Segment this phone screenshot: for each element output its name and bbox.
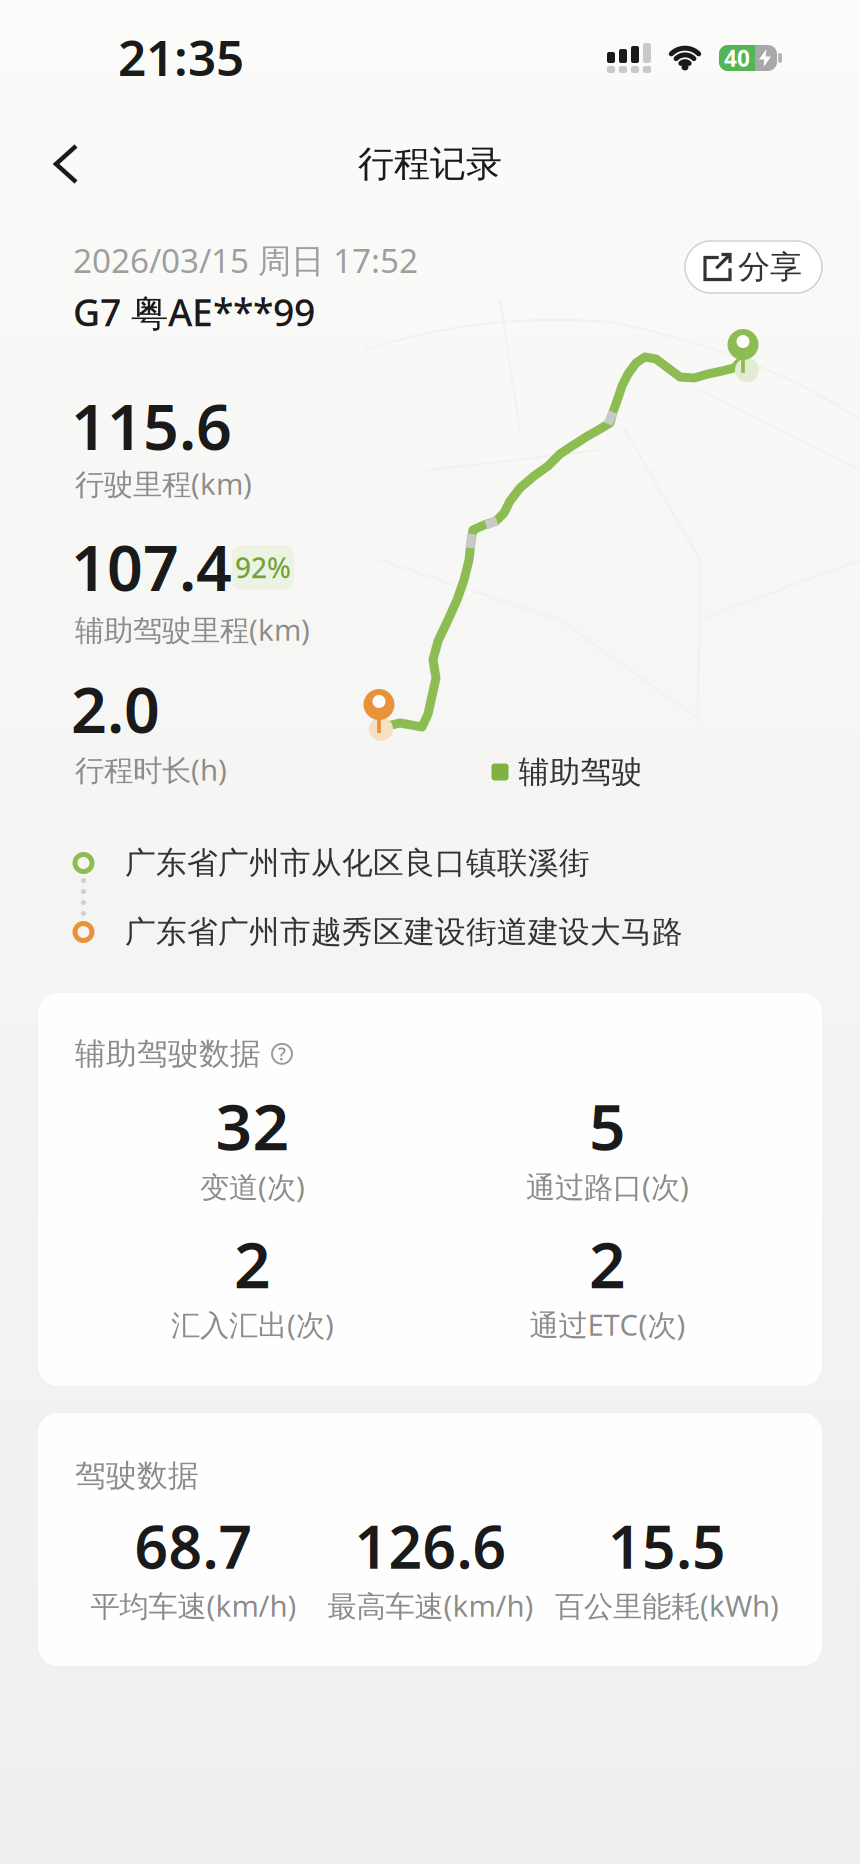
button[interactable]: 返回	[46, 136, 86, 192]
staticText: 126.6	[354, 1507, 506, 1585]
staticText: 广东省广州市从化区良口镇联溪街	[125, 844, 590, 882]
staticText: 68.7	[134, 1507, 252, 1585]
staticText: 107.4	[71, 525, 232, 608]
staticText: 40	[724, 43, 750, 73]
staticText: 115.6	[71, 384, 232, 467]
staticText: 92%	[235, 549, 291, 586]
staticText: 分享	[738, 247, 802, 287]
button[interactable]: 辅助驾驶数据说明	[269, 1036, 295, 1072]
staticText: 辅助驾驶里程(km)	[75, 610, 310, 649]
staticText: 百公里能耗(kWh)	[555, 1586, 779, 1625]
staticText: 行程时长(h)	[75, 750, 227, 789]
staticText: 广东省广州市越秀区建设街道建设大马路	[125, 913, 683, 951]
staticText: 2	[234, 1221, 271, 1306]
staticText: 辅助驾驶数据	[75, 1035, 261, 1073]
staticText: 辅助驾驶	[518, 753, 642, 791]
staticText: G7 粤AE***99	[73, 287, 315, 337]
staticText: 通过ETC(次)	[529, 1305, 685, 1344]
staticText: 最高车速(km/h)	[327, 1586, 533, 1625]
staticText: 平均车速(km/h)	[90, 1586, 296, 1625]
staticText: ?	[278, 1042, 286, 1065]
staticText: 32	[215, 1083, 289, 1168]
staticText: 驾驶数据	[75, 1457, 199, 1495]
staticText: 2.0	[71, 667, 160, 750]
staticText: 15.5	[608, 1507, 726, 1585]
staticText: 5	[589, 1083, 626, 1168]
button[interactable]: 分享	[685, 241, 822, 293]
staticText: 行驶里程(km)	[75, 464, 252, 503]
staticText: 2026/03/15 周日 17:52	[73, 238, 418, 282]
staticText: 行程记录	[358, 142, 502, 186]
staticText: 通过路口(次)	[526, 1167, 689, 1206]
staticText: 2	[589, 1221, 626, 1306]
staticText: 21:35	[118, 24, 244, 89]
staticText: 汇入汇出(次)	[171, 1305, 334, 1344]
staticText: 变道(次)	[200, 1167, 305, 1206]
